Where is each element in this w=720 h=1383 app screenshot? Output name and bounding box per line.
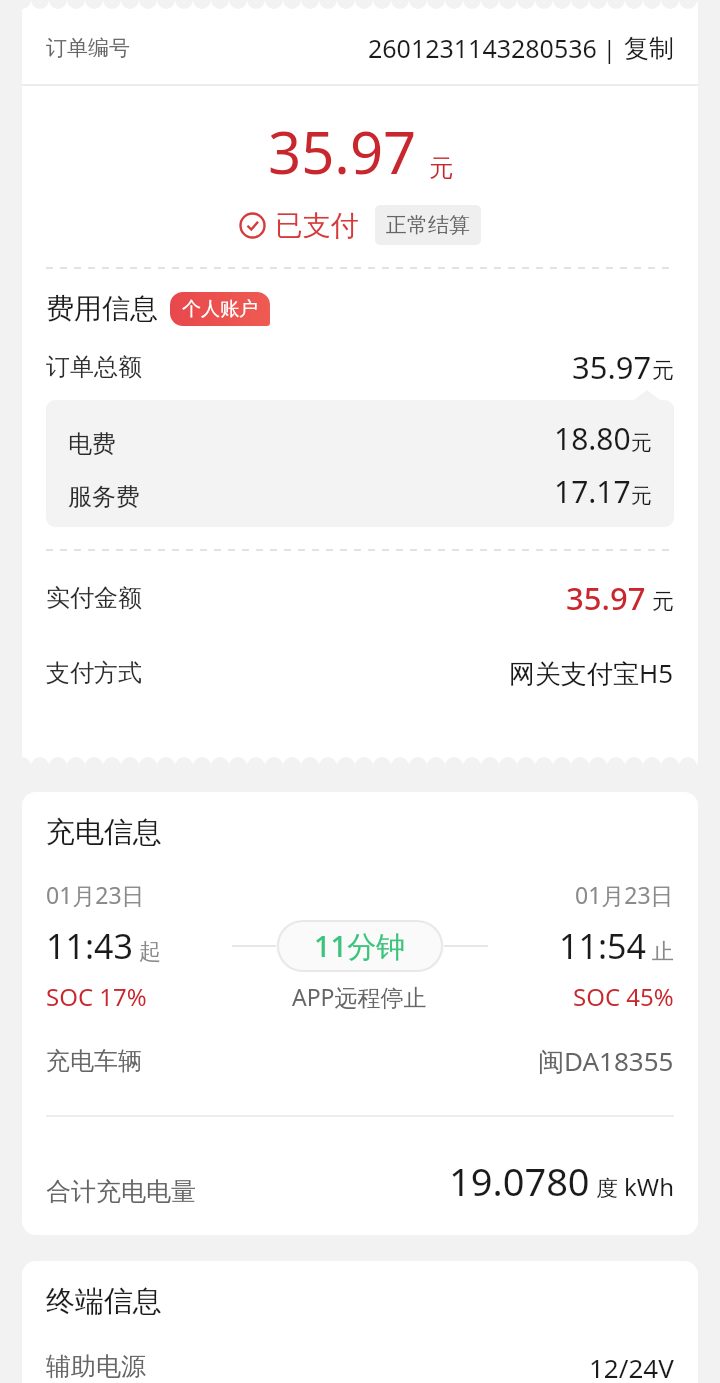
staticText: 终端信息 — [46, 1283, 162, 1320]
staticText: 2601231143280536 — [368, 31, 597, 65]
staticText: 复制 — [624, 33, 674, 64]
staticText: 辅助电源 — [46, 1351, 146, 1382]
staticText: 01月23日 — [46, 879, 145, 910]
staticText: kWh — [624, 1170, 674, 1203]
staticText: 充电车辆 — [46, 1046, 142, 1076]
staticText: 实付金额 — [46, 583, 142, 613]
button[interactable]: 11分钟 — [276, 920, 444, 972]
staticText: 元 — [631, 430, 652, 456]
staticText: 费用信息 — [46, 291, 158, 326]
staticText: 个人账户 — [182, 297, 258, 321]
button[interactable]: 个人账户 — [170, 292, 270, 326]
staticText: 正常结算 — [386, 212, 470, 238]
staticText: 服务费 — [68, 482, 140, 512]
staticText: | — [603, 33, 616, 64]
staticText: 网关支付宝H5 — [509, 655, 674, 691]
staticText: 元 — [429, 153, 453, 183]
staticText: APP远程停止 — [292, 981, 427, 1012]
staticText: 元 — [631, 483, 652, 509]
staticText: 12/24V — [589, 1350, 674, 1383]
staticText: 11分钟 — [314, 926, 406, 966]
staticText: 18.80 — [554, 418, 631, 459]
staticText: 闽DA18355 — [538, 1043, 674, 1079]
staticText: 11:43 — [46, 923, 133, 969]
staticText: 11:54 — [559, 923, 646, 969]
staticText: 电费 — [68, 429, 116, 459]
staticText: 35.97 — [566, 577, 646, 619]
staticText: 元 — [652, 357, 674, 385]
staticText: 01月23日 — [575, 879, 674, 910]
staticText: 充电信息 — [46, 814, 162, 851]
staticText: 35.97 — [268, 112, 417, 191]
staticText: 起 — [139, 938, 161, 966]
staticText: 已支付 — [275, 208, 359, 243]
staticText: 元 — [652, 588, 674, 616]
button[interactable]: 正常结算 — [375, 205, 481, 245]
staticText: SOC 45% — [573, 980, 674, 1013]
staticText: 35.97 — [572, 346, 652, 388]
staticText: 订单总额 — [46, 352, 142, 382]
staticText: 17.17 — [554, 471, 631, 512]
staticText: 合计充电电量 — [46, 1176, 196, 1207]
staticText: 订单编号 — [46, 35, 130, 61]
button[interactable]: 订单编号 — [22, 12, 698, 84]
staticText: 度 — [596, 1175, 618, 1203]
staticText: 19.0780 — [449, 1155, 590, 1207]
staticText: 止 — [652, 938, 674, 966]
staticText: 支付方式 — [46, 658, 142, 688]
staticText: SOC 17% — [46, 980, 147, 1013]
